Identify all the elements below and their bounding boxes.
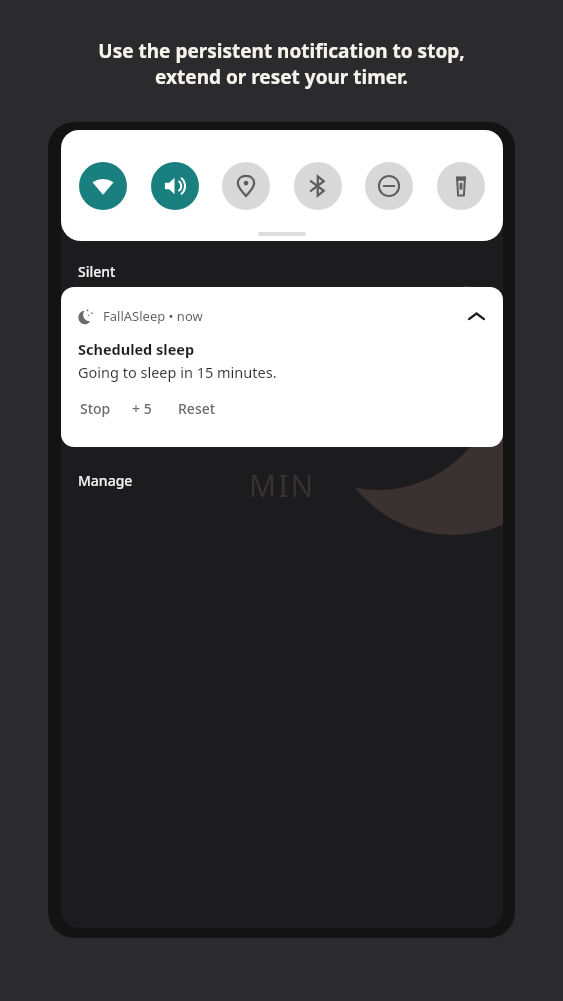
staticText: Manage (78, 471, 133, 490)
button[interactable]: Bluetooth (294, 162, 342, 210)
button[interactable]: Reset (176, 396, 218, 421)
button[interactable]: FallASleep • now (61, 287, 503, 447)
staticText: Use the persistent notification to stop,… (24, 38, 539, 89)
button[interactable]: Manage (73, 467, 138, 494)
staticText: Scheduled sleep (78, 339, 195, 359)
button[interactable]: Location (222, 162, 270, 210)
button[interactable]: Flashlight (437, 162, 485, 210)
staticText: MIN (249, 465, 316, 506)
button[interactable]: + 5 (130, 396, 154, 421)
button[interactable]: Stop (78, 396, 113, 421)
button[interactable]: Sound (151, 162, 199, 210)
staticText: FallASleep • now (103, 307, 203, 325)
button[interactable]: Do not disturb (365, 162, 413, 210)
staticText: Reset (178, 399, 216, 418)
staticText: Going to sleep in 15 minutes. (78, 362, 277, 382)
staticText: Silent (78, 262, 116, 281)
staticText: 15 (227, 330, 337, 461)
button[interactable]: Collapse notification (463, 303, 489, 329)
button[interactable]: Wi-Fi (79, 162, 127, 210)
staticText: + 5 (132, 399, 152, 418)
staticText: Stop (80, 399, 111, 418)
